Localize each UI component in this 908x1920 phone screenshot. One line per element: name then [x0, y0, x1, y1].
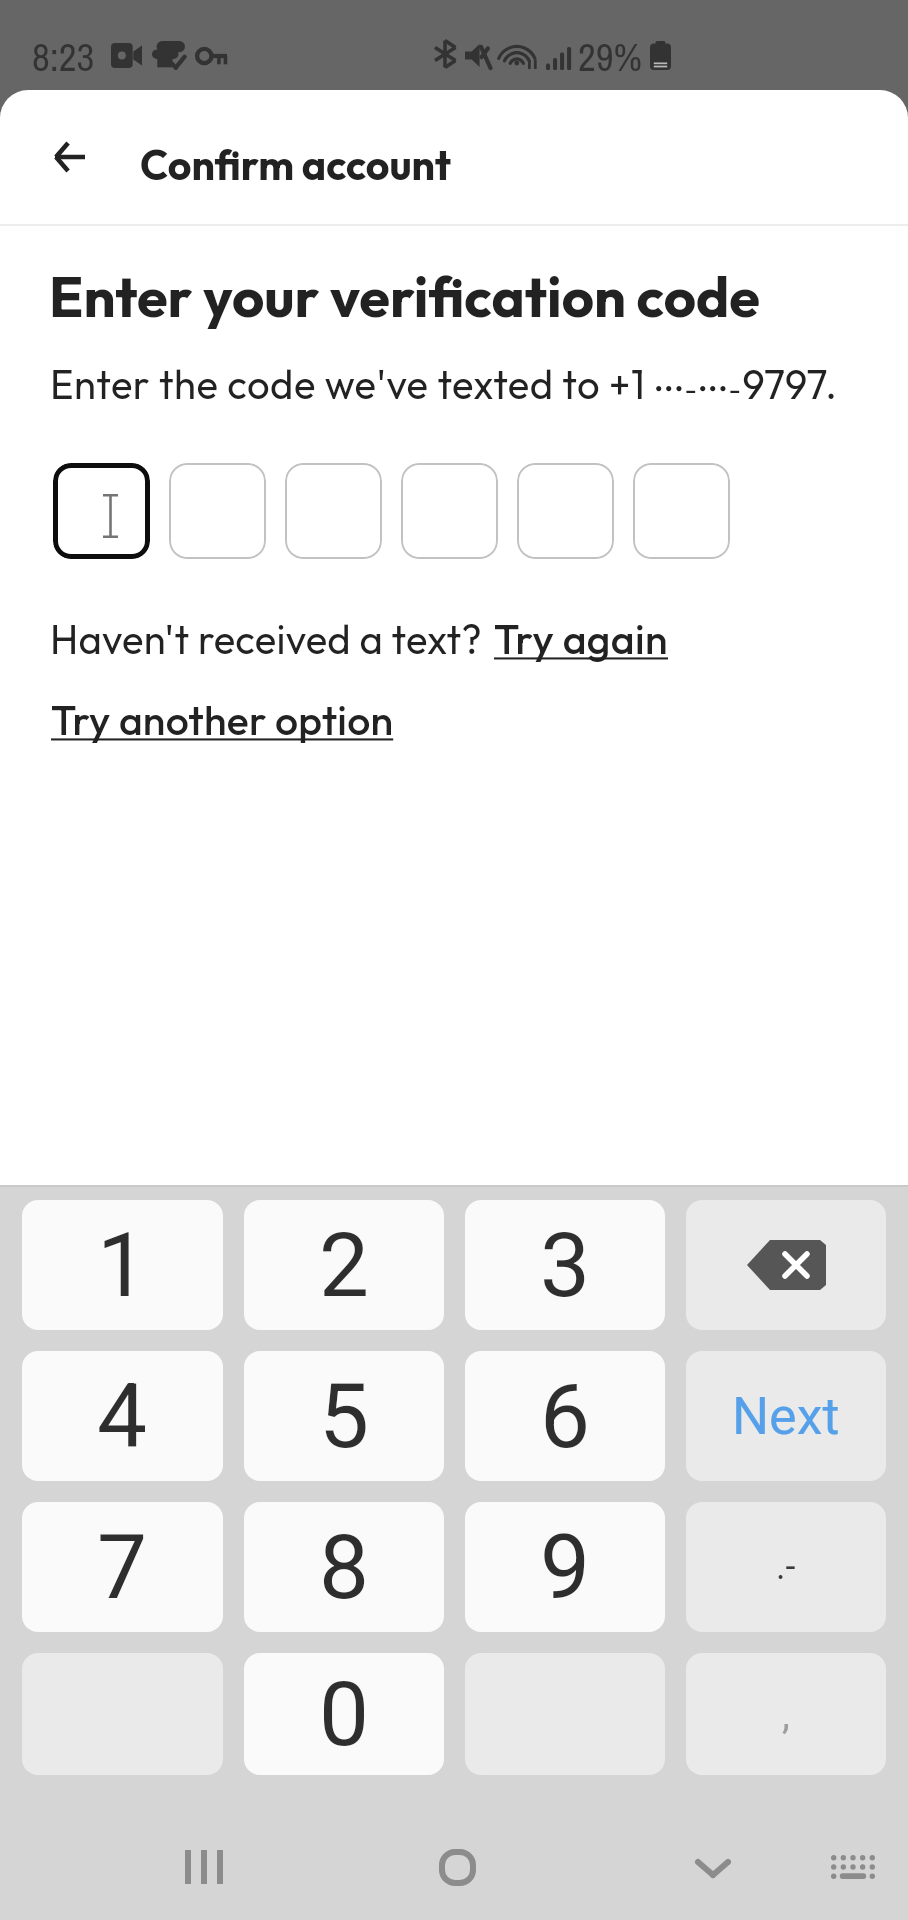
button[interactable]: 7	[22, 1502, 223, 1632]
staticText: Haven't received a text?	[50, 614, 482, 664]
button[interactable]: 2	[244, 1200, 444, 1330]
button[interactable]: Try again	[494, 613, 668, 665]
button[interactable]: Back	[668, 1823, 758, 1913]
button[interactable]	[633, 463, 730, 559]
button[interactable]: Try another option	[51, 694, 394, 746]
staticText: 29%	[578, 31, 642, 84]
staticText: 5	[319, 1364, 370, 1468]
staticText: 1	[97, 1213, 148, 1317]
button[interactable]	[169, 463, 266, 559]
staticText: Enter the code we've texted to +1 •••-••…	[50, 359, 838, 409]
button[interactable]: Home	[412, 1822, 502, 1912]
staticText: .-	[776, 1546, 796, 1588]
staticText: 4	[97, 1364, 148, 1468]
button[interactable]: 6	[465, 1351, 665, 1481]
staticText: 7	[97, 1515, 148, 1619]
button[interactable]: 3	[465, 1200, 665, 1330]
staticText: Enter your verification code	[49, 261, 760, 332]
button[interactable]	[53, 463, 150, 559]
button[interactable]: Backspace	[686, 1200, 886, 1330]
button[interactable]: Change keyboard	[808, 1822, 898, 1912]
other: Backspace	[686, 1200, 886, 1330]
button[interactable]: Recent apps	[159, 1822, 249, 1912]
staticText: ,	[782, 1691, 790, 1738]
button[interactable]: 4	[22, 1351, 223, 1481]
button[interactable]: 0	[244, 1653, 444, 1775]
staticText: 8:23	[32, 31, 95, 84]
staticText: Try another option	[51, 694, 394, 746]
button[interactable]: ,	[686, 1653, 886, 1775]
staticText: 9	[540, 1515, 591, 1619]
staticText: 8	[319, 1515, 370, 1619]
button[interactable]: 5	[244, 1351, 444, 1481]
staticText: 0	[319, 1662, 370, 1766]
staticText: 2	[319, 1213, 370, 1317]
button[interactable]: 9	[465, 1502, 665, 1632]
button[interactable]: 1	[22, 1200, 223, 1330]
button[interactable]: 8	[244, 1502, 444, 1632]
staticText: Try again	[494, 613, 668, 665]
staticText: 6	[540, 1364, 591, 1468]
button[interactable]	[401, 463, 498, 559]
staticText: Next	[732, 1386, 840, 1447]
button[interactable]	[517, 463, 614, 559]
staticText: 3	[540, 1213, 591, 1317]
button[interactable]: Back	[22, 114, 118, 200]
button[interactable]: .-	[686, 1502, 886, 1632]
staticText: Confirm account	[140, 139, 452, 191]
button[interactable]: Next	[686, 1351, 886, 1481]
button[interactable]	[285, 463, 382, 559]
